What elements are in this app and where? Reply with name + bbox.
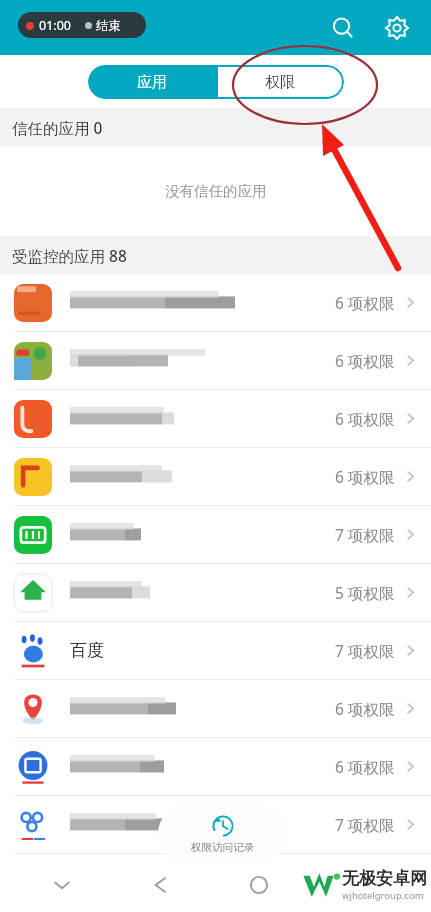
button[interactable]: 7 项权限	[0, 796, 431, 854]
staticText: 7 项权限	[335, 524, 395, 545]
staticText: 信任的应用 0	[12, 117, 103, 138]
staticText: 无极安卓网	[342, 868, 427, 889]
button[interactable]: 6 项权限	[0, 274, 431, 332]
button[interactable]: 5 项权限	[0, 564, 431, 622]
button[interactable]: 7 项权限	[0, 506, 431, 564]
button[interactable]: 6 项权限	[0, 448, 431, 506]
button[interactable]: 应用	[88, 65, 216, 99]
staticText: 6 项权限	[335, 698, 395, 719]
staticText: 应用	[137, 73, 167, 92]
staticText: 没有信任的应用	[165, 182, 267, 200]
button[interactable]: Settings	[375, 6, 419, 50]
staticText: 受监控的应用 88	[12, 245, 127, 266]
button[interactable]: Search	[321, 6, 365, 50]
button[interactable]: Back	[6, 6, 50, 50]
staticText: 权限管理	[52, 16, 128, 40]
staticText: 5 项权限	[335, 582, 395, 603]
staticText: wjhotelgroup.com	[342, 889, 424, 902]
staticText: 6 项权限	[335, 466, 395, 487]
button[interactable]: 6 项权限	[0, 332, 431, 390]
staticText: 6 项权限	[335, 408, 395, 429]
button[interactable]: Home	[237, 863, 281, 907]
button[interactable]: Hide keyboard	[40, 863, 84, 907]
staticText: 百度	[70, 640, 104, 661]
staticText: 6 项权限	[335, 756, 395, 777]
staticText: 权限	[265, 73, 295, 92]
staticText: 01:00	[39, 17, 71, 34]
staticText: 权限访问记录	[191, 841, 254, 854]
button[interactable]: 权限	[216, 65, 344, 99]
staticText: 结束	[96, 18, 121, 34]
button[interactable]: 6 项权限	[0, 680, 431, 738]
button[interactable]: 权限访问记录	[158, 806, 287, 861]
staticText: 6 项权限	[335, 292, 395, 313]
staticText: 7 项权限	[335, 640, 395, 661]
staticText: 6 项权限	[335, 350, 395, 371]
staticText: 7 项权限	[335, 814, 395, 835]
button[interactable]: 01:00	[18, 12, 146, 38]
button[interactable]: 百度	[0, 622, 431, 680]
button[interactable]: 6 项权限	[0, 738, 431, 796]
button[interactable]: Back	[139, 863, 183, 907]
button[interactable]: 6 项权限	[0, 390, 431, 448]
